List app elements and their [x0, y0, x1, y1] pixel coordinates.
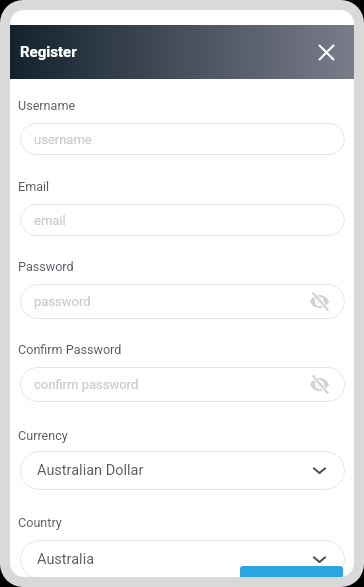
button[interactable]: Toggle password visibility [310, 293, 329, 310]
staticText: confirm password [34, 377, 139, 392]
staticText: email [34, 213, 66, 228]
staticText: Password [18, 259, 74, 274]
staticText: password [34, 294, 91, 309]
button[interactable]: email [20, 204, 345, 236]
staticText: Username [18, 98, 76, 113]
button[interactable]: Toggle password visibility [310, 376, 329, 393]
staticText: Email [18, 179, 50, 194]
staticText: Australia [37, 551, 95, 568]
staticText: Country [18, 515, 62, 530]
staticText: Confirm Password [18, 342, 122, 357]
button[interactable]: Australia [20, 540, 345, 577]
button[interactable]: username [20, 123, 345, 155]
button[interactable]: password [20, 284, 345, 319]
button[interactable] [240, 566, 343, 577]
button[interactable]: Close [312, 38, 340, 66]
button[interactable]: confirm password [20, 367, 345, 402]
staticText: Register [20, 43, 77, 61]
button[interactable]: Australian Dollar [20, 451, 345, 490]
staticText: username [34, 132, 92, 147]
staticText: Currency [18, 428, 68, 443]
staticText: Australian Dollar [37, 462, 144, 479]
